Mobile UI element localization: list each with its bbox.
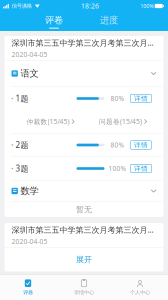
staticText: 详情 [134, 94, 148, 103]
staticText: 展开 [76, 255, 92, 264]
button[interactable]: 1题 [4, 87, 163, 110]
button[interactable]: 问题卷(15/45) [99, 117, 147, 126]
staticText: 80% [110, 141, 124, 149]
button[interactable]: 详情 [130, 94, 151, 103]
staticText: 评卷 [45, 14, 63, 26]
staticText: 仲裁数(15/45) [26, 117, 69, 126]
button[interactable]: 展开 [4, 247, 163, 271]
staticText: 暂无 [76, 205, 92, 214]
staticText: 18:26 [81, 2, 99, 10]
button[interactable]: 详情 [130, 141, 151, 149]
staticText: 信号满格 [12, 3, 32, 9]
staticText: 进度 [100, 14, 118, 26]
button[interactable]: 语文 [4, 60, 163, 86]
staticText: 详情 [134, 141, 148, 149]
staticText: 2题 [15, 140, 28, 150]
staticText: 深圳市第三五中学第三次月考第三次月考第次... [11, 37, 156, 48]
staticText: 100% [140, 2, 153, 10]
button[interactable]: 评卷 [0, 275, 56, 300]
staticText: 个人中心 [130, 289, 150, 296]
button[interactable]: 详情 [130, 164, 151, 173]
button[interactable]: 2题 [4, 133, 163, 156]
staticText: 评卷 [23, 289, 33, 296]
staticText: 2020-04-05 [11, 50, 47, 59]
button[interactable]: 个人中心 [112, 275, 168, 300]
button[interactable]: 数学 [4, 180, 163, 201]
button[interactable]: 3题 [4, 157, 163, 180]
staticText: 数学 [20, 185, 38, 197]
staticText: 1题 [15, 93, 28, 104]
staticText: 100% [108, 164, 126, 173]
button[interactable]: 学情中心 [56, 275, 112, 300]
staticText: 详情 [134, 164, 148, 173]
staticText: 80% [110, 94, 124, 103]
staticText: 语文 [20, 68, 38, 79]
staticText: 3题 [15, 163, 28, 174]
staticText: 深圳市第三五中学第三次月考第三次月考第次... [11, 224, 156, 235]
staticText: 2020-04-05 [11, 237, 47, 246]
staticText: 学情中心 [74, 289, 94, 296]
staticText: 问题卷(15/45) [99, 117, 142, 126]
button[interactable]: 进度 [88, 12, 130, 30]
button[interactable]: 仲裁数(15/45) [26, 117, 75, 126]
button[interactable]: 评卷 [33, 12, 75, 30]
